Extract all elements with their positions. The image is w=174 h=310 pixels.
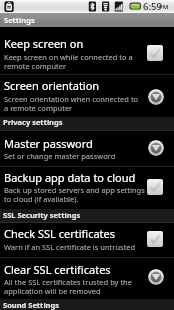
- staticText: Clear SSL certificates: [4, 262, 111, 277]
- staticText: application will be removed: [4, 286, 101, 296]
- staticText: SSL Security settings: [3, 210, 81, 220]
- button[interactable]: Toggle setting: [147, 231, 163, 247]
- button[interactable]: Toggle setting: [147, 45, 163, 61]
- button[interactable]: Toggle setting: [147, 179, 163, 195]
- button[interactable]: [0, 75, 174, 117]
- button[interactable]: [0, 167, 174, 209]
- staticText: Settings: [4, 15, 35, 25]
- staticText: 6:59: [143, 0, 162, 13]
- staticText: PM: [159, 3, 169, 11]
- staticText: Keep screen on while connected to a: [4, 52, 133, 62]
- staticText: Set or change master password: [4, 151, 116, 161]
- staticText: Screen orientation when connected to: [4, 94, 139, 104]
- staticText: All the SSL certificates trusted by the: [4, 277, 132, 287]
- staticText: Sound Settings: [3, 300, 60, 310]
- button[interactable]: Open options: [148, 140, 164, 156]
- staticText: Keep screen on: [4, 36, 84, 51]
- staticText: Check SSL certificates: [4, 226, 116, 241]
- staticText: Screen orientation: [4, 78, 100, 93]
- button[interactable]: [0, 259, 174, 300]
- button[interactable]: Open options: [148, 89, 164, 105]
- staticText: to cloud (if available).: [4, 194, 79, 204]
- staticText: Backup app data to cloud: [4, 170, 136, 185]
- button[interactable]: Open options: [148, 269, 164, 285]
- staticText: Warn if an SSL certificate is untrusted: [4, 242, 136, 252]
- staticText: remote computer: [4, 61, 67, 71]
- button[interactable]: [0, 27, 174, 74]
- staticText: a remote computer: [4, 103, 73, 113]
- staticText: Master password: [4, 136, 93, 151]
- button[interactable]: [0, 223, 174, 258]
- staticText: Privacy settings: [3, 117, 63, 127]
- staticText: Back up stored servers and app settings: [4, 185, 145, 195]
- button[interactable]: [0, 131, 174, 167]
